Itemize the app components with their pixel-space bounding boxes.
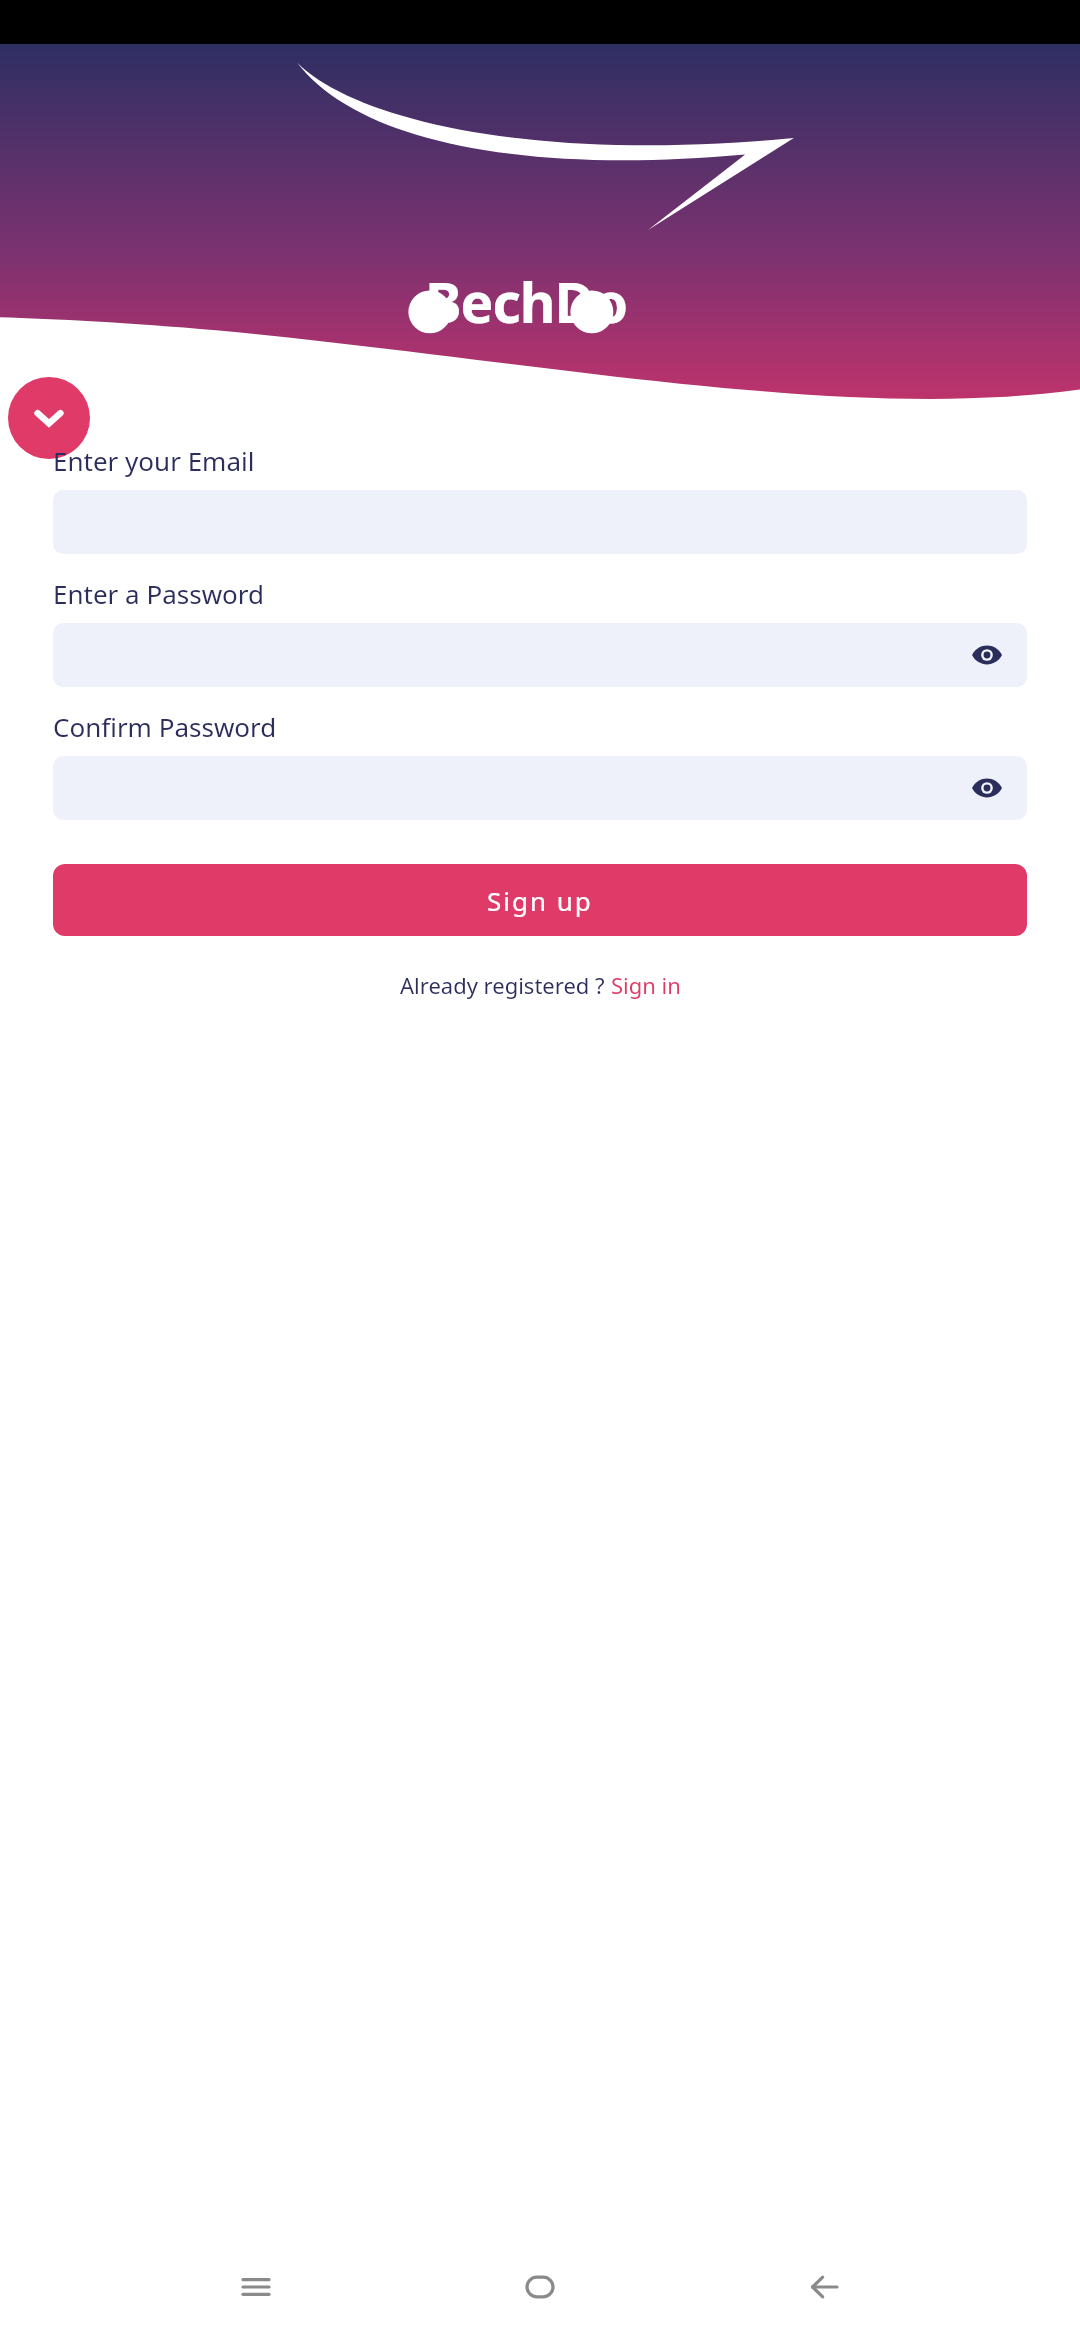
staticText: Enter a Password — [53, 576, 265, 611]
staticText: BechDo — [425, 264, 628, 339]
staticText: Confirm Password — [53, 709, 277, 744]
button[interactable]: Show password — [53, 756, 1027, 820]
button[interactable]: Show password — [967, 635, 1007, 675]
button[interactable]: Sign up — [53, 864, 1027, 936]
button[interactable]: Recents — [228, 2259, 284, 2315]
button[interactable]: Show password — [967, 768, 1007, 808]
button[interactable]: Show password — [53, 623, 1027, 687]
button[interactable]: Home — [512, 2259, 568, 2315]
button[interactable]: Back — [796, 2259, 852, 2315]
staticText: Sign up — [487, 883, 593, 918]
button[interactable]: Sign in — [611, 970, 681, 1000]
staticText: Enter your Email — [53, 443, 255, 478]
staticText: Already registered ? — [400, 970, 611, 1000]
button[interactable]: Collapse — [8, 377, 90, 459]
staticText: Sign in — [611, 970, 681, 1000]
